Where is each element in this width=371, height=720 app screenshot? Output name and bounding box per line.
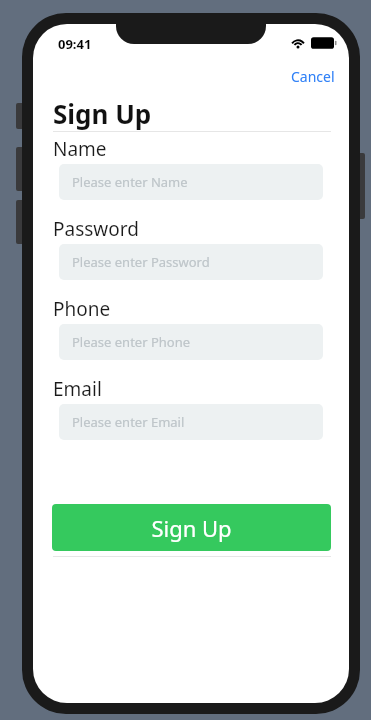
button[interactable]: Please enter Name <box>59 164 323 200</box>
staticText: Sign Up <box>53 96 152 131</box>
staticText: Please enter Name <box>72 173 188 191</box>
staticText: Email <box>53 376 102 402</box>
staticText: Name <box>53 136 107 162</box>
button[interactable]: Sign Up <box>52 504 331 551</box>
staticText: Please enter Email <box>72 413 185 431</box>
button[interactable]: Please enter Password <box>59 244 323 280</box>
button[interactable]: Please enter Email <box>59 404 323 440</box>
staticText: 09:41 <box>58 35 92 53</box>
staticText: Sign Up <box>151 513 232 543</box>
staticText: Cancel <box>291 67 335 86</box>
button[interactable]: Please enter Phone <box>59 324 323 360</box>
button[interactable]: Cancel <box>283 63 343 90</box>
staticText: Please enter Password <box>72 253 210 271</box>
staticText: Phone <box>53 296 111 322</box>
staticText: Please enter Phone <box>72 333 191 351</box>
staticText: Password <box>53 216 139 242</box>
